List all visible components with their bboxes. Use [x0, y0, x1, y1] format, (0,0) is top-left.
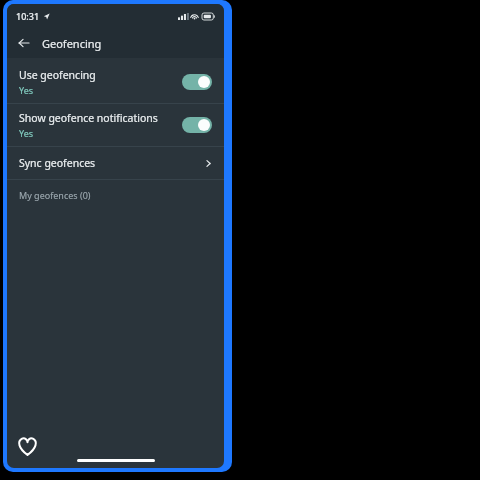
button[interactable]: Show geofence notifications — [7, 104, 224, 146]
staticText: Show geofence notifications — [19, 111, 158, 125]
button[interactable]: Use geofencing — [7, 61, 224, 103]
button[interactable]: Toggle — [182, 74, 212, 90]
staticText: Sync geofences — [19, 156, 205, 170]
staticText: My geofences (0) — [19, 189, 91, 201]
staticText: Yes — [19, 127, 34, 139]
button[interactable]: Back — [13, 32, 35, 54]
staticText: 10:31 — [16, 10, 40, 22]
button[interactable]: Favorites — [13, 432, 41, 460]
staticText: Geofencing — [42, 36, 102, 51]
button[interactable]: Sync geofences — [7, 147, 224, 179]
button[interactable]: Toggle — [182, 117, 212, 133]
staticText: Yes — [19, 84, 34, 96]
staticText: Use geofencing — [19, 68, 96, 82]
